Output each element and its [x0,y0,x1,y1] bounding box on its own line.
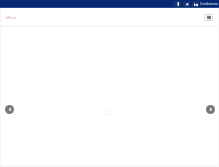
button[interactable]: Menu [204,14,213,21]
staticText: Contáctenos [200,2,219,6]
button[interactable]: Next [206,105,215,114]
button[interactable]: Mitsui [6,15,16,20]
button[interactable]: Previous [5,105,14,114]
button[interactable]: Twitter [183,1,190,7]
staticText: Mitsui [6,15,16,20]
button[interactable]: LinkedIn [192,1,199,7]
button[interactable]: Facebook [174,1,181,7]
button[interactable]: Contáctenos [200,2,219,6]
